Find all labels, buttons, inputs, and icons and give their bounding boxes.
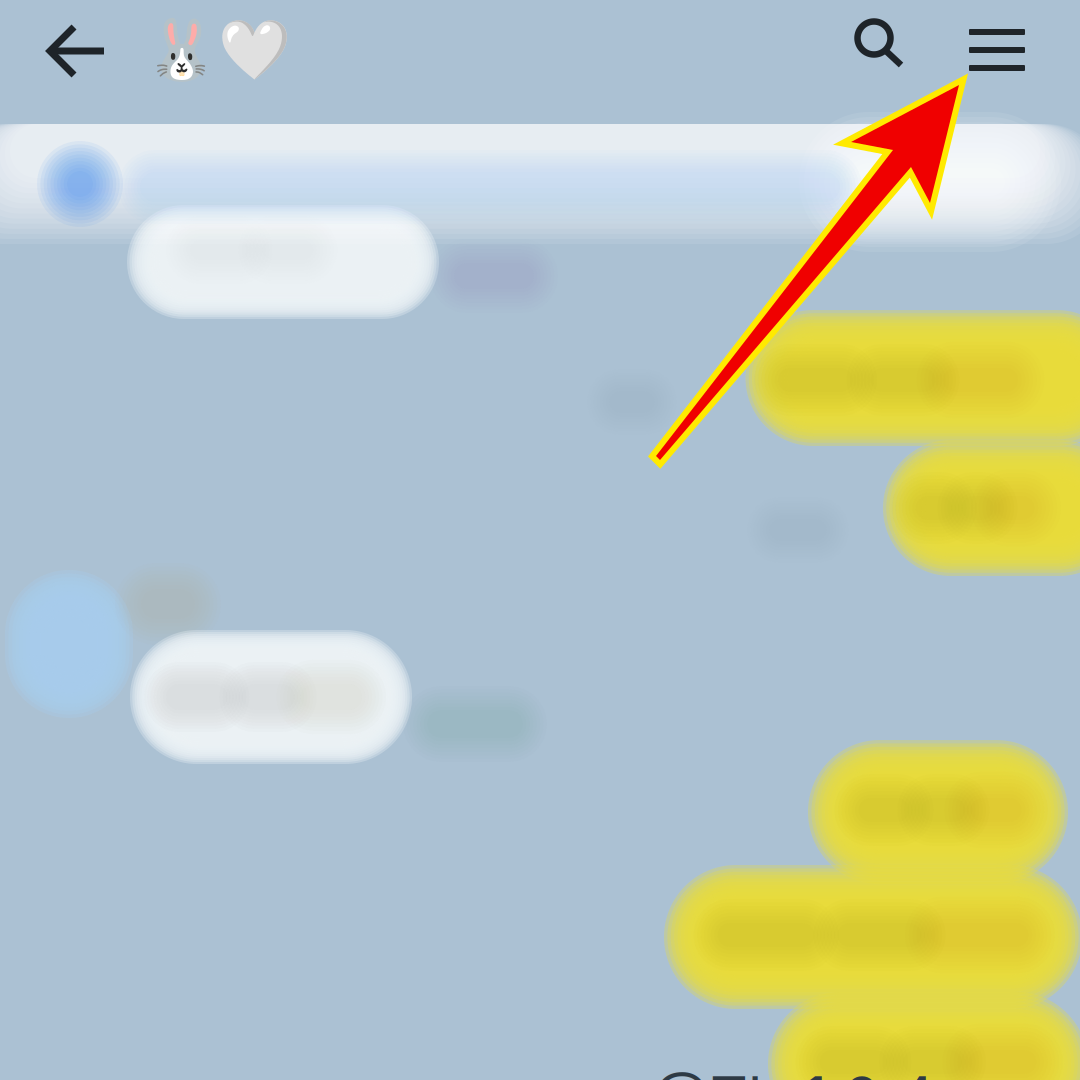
button[interactable]: 🐰🤍 [123,5,313,95]
staticText: @Th_1 2 4 [653,1062,935,1080]
button[interactable]: Search [838,5,924,91]
staticText: 🐰🤍 [145,16,291,84]
button[interactable]: Menu [954,7,1040,93]
button[interactable]: Back [33,6,123,96]
